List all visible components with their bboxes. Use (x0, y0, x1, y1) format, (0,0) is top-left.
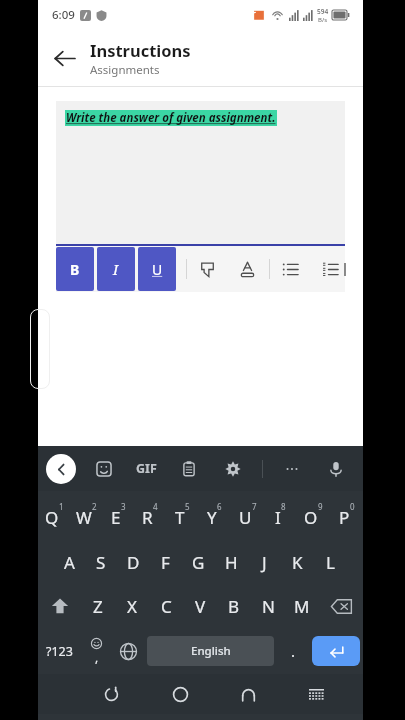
button[interactable]: K (281, 540, 314, 584)
button[interactable]: J (248, 540, 281, 584)
button[interactable]: More options (277, 454, 307, 484)
button[interactable]: U (231, 494, 264, 540)
staticText: B (70, 260, 80, 279)
staticText: A (64, 551, 75, 574)
staticText: L (326, 551, 335, 574)
button[interactable]: M (285, 584, 319, 628)
button[interactable]: Emoji and comma (81, 628, 112, 674)
staticText: U (152, 260, 163, 279)
button[interactable]: S (85, 540, 117, 584)
button[interactable]: L (314, 540, 347, 584)
staticText: Q (45, 506, 59, 529)
staticText: 7 (252, 501, 257, 512)
staticText: N (262, 595, 275, 618)
button[interactable]: Change language (112, 628, 144, 674)
staticText: H (225, 551, 238, 574)
button[interactable]: ?123 (38, 628, 81, 674)
button[interactable]: Numbered list (316, 255, 344, 283)
staticText: Write the answer of given assignment. (66, 110, 276, 126)
button[interactable]: Y (198, 494, 231, 540)
staticText: U (239, 506, 252, 529)
button[interactable]: Shift (38, 584, 81, 628)
button[interactable]: Clipboard (174, 454, 204, 484)
button[interactable]: Enter (312, 636, 360, 666)
button[interactable]: Back (235, 681, 261, 707)
button[interactable]: B (217, 584, 251, 628)
staticText: 594 (317, 7, 329, 16)
button[interactable]: GIF (132, 456, 161, 481)
staticText: . (291, 641, 296, 661)
button[interactable]: Hide keyboard (303, 681, 329, 707)
staticText: R (142, 506, 153, 529)
button[interactable]: U (138, 247, 176, 291)
button[interactable]: R (134, 494, 166, 540)
staticText: V (195, 595, 206, 618)
staticText: GIF (136, 460, 157, 477)
staticText: S (96, 551, 106, 574)
button[interactable]: W (70, 494, 102, 540)
button[interactable]: D (117, 540, 149, 584)
button[interactable]: Text color (233, 255, 261, 283)
button[interactable]: T (166, 494, 198, 540)
staticText: 1 (59, 501, 64, 512)
button[interactable]: C (149, 584, 183, 628)
staticText: J (262, 551, 267, 574)
staticText: I (113, 260, 119, 279)
staticText: Y (207, 506, 217, 529)
staticText: O (304, 506, 318, 529)
staticText: F (161, 551, 170, 574)
staticText: W (76, 506, 92, 529)
staticText: X (127, 595, 137, 618)
staticText: 3 (121, 501, 126, 512)
staticText: 9 (318, 501, 323, 512)
staticText: 0 (350, 501, 355, 512)
button[interactable]: Keyboard settings (218, 454, 248, 484)
button[interactable]: H (215, 540, 248, 584)
button[interactable]: I (264, 494, 297, 540)
staticText: 2 (92, 501, 97, 512)
button[interactable]: G (182, 540, 215, 584)
button[interactable]: P (330, 494, 363, 540)
button[interactable]: I (97, 247, 135, 291)
staticText: Instructions (90, 39, 191, 61)
staticText: P (339, 506, 350, 529)
button[interactable]: O (297, 494, 330, 540)
button[interactable]: Back (38, 32, 90, 84)
staticText: G (192, 551, 205, 574)
staticText: Assignments (90, 62, 160, 78)
staticText: 6 (217, 501, 222, 512)
staticText: 4 (153, 501, 158, 512)
staticText: C (161, 595, 172, 618)
staticText: E (111, 506, 121, 529)
button[interactable]: Close toolbar (46, 454, 76, 484)
button[interactable]: Bulleted list (276, 255, 304, 283)
button[interactable]: Highlighter (193, 255, 221, 283)
staticText: M (294, 595, 310, 618)
button[interactable]: Backspace (319, 584, 363, 628)
button[interactable]: V (183, 584, 217, 628)
button[interactable]: Voice input (321, 454, 351, 484)
button[interactable]: Stickers (89, 454, 119, 484)
button[interactable]: Home (167, 681, 193, 707)
button[interactable]: . (277, 628, 309, 674)
button[interactable]: Z (81, 584, 115, 628)
button[interactable]: A (53, 540, 85, 584)
button[interactable]: Recent apps (98, 681, 124, 707)
staticText: I (275, 506, 281, 529)
staticText: ?123 (46, 643, 73, 660)
button[interactable]: N (251, 584, 285, 628)
button[interactable]: X (115, 584, 149, 628)
button[interactable]: English (147, 636, 274, 666)
button[interactable]: B (56, 247, 94, 291)
staticText: English (191, 643, 231, 659)
staticText: B/s (318, 16, 328, 24)
button[interactable]: Q (38, 494, 70, 540)
staticText: , (95, 649, 99, 665)
staticText: B (228, 595, 240, 618)
button[interactable]: Write the answer of given assignment. (56, 101, 345, 244)
button[interactable]: F (149, 540, 182, 584)
staticText: 5 (185, 501, 190, 512)
button[interactable]: E (102, 494, 134, 540)
staticText: K (292, 551, 303, 574)
staticText: T (175, 506, 185, 529)
